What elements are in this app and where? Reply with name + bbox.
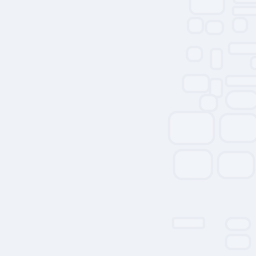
button[interactable]: Filter [188, 18, 203, 33]
button[interactable]: Continue [226, 218, 250, 230]
button[interactable]: Sort [206, 21, 223, 34]
button[interactable]: More [226, 235, 250, 249]
button[interactable]: Account [233, 18, 247, 32]
